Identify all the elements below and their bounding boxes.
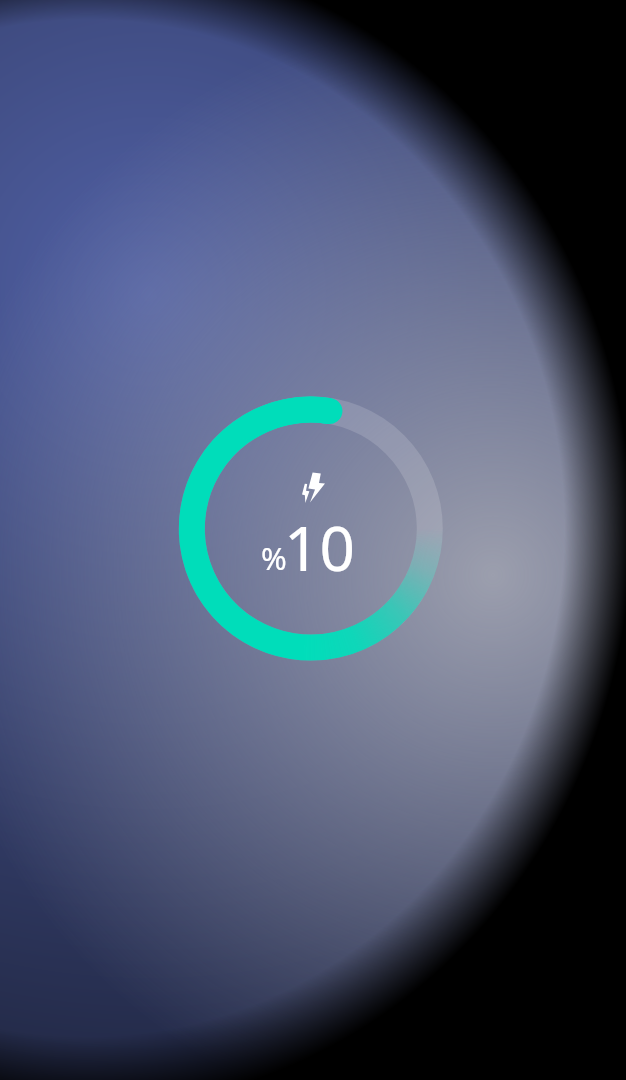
button[interactable]: Battery charging 10 percent bbox=[0, 0, 626, 1080]
staticText: 10 bbox=[284, 505, 355, 589]
staticText: % bbox=[261, 537, 287, 579]
